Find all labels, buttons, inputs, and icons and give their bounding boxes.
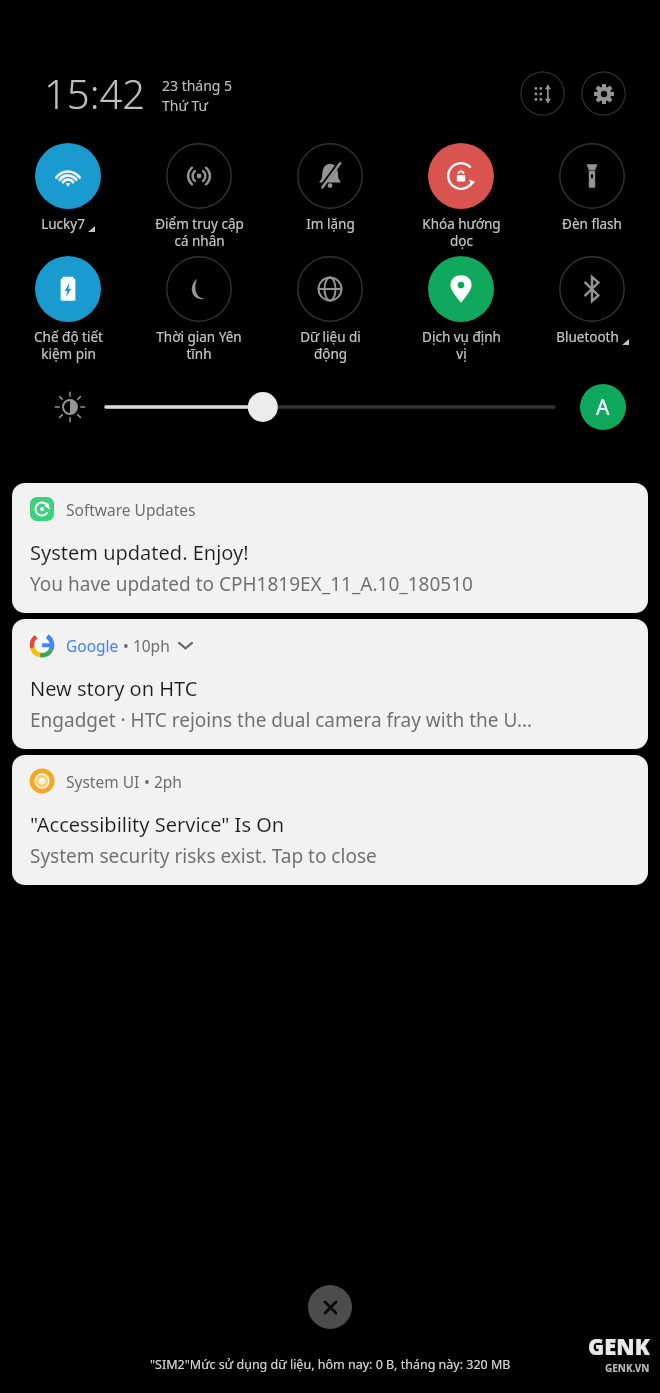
staticText: 15:42 bbox=[44, 66, 146, 120]
button[interactable]: Brightness bbox=[106, 390, 554, 424]
button[interactable]: Thời gian Yên tĩnh bbox=[136, 256, 262, 363]
staticText: "SIM2"Mức sử dụng dữ liệu, hôm nay: 0 B,… bbox=[150, 1356, 511, 1373]
staticText: Im lặng bbox=[306, 215, 355, 233]
staticText: Khóa hướng dọc bbox=[422, 215, 501, 250]
staticText: "Accessibility Service" Is On bbox=[30, 811, 285, 838]
staticText: You have updated to CPH1819EX_11_A.10_18… bbox=[30, 571, 473, 597]
button[interactable]: Auto brightness bbox=[580, 384, 626, 430]
staticText: A bbox=[596, 393, 610, 422]
staticText: GENK.VN bbox=[605, 1361, 650, 1375]
button[interactable]: Điểm truy cập cá nhân bbox=[136, 143, 262, 250]
button[interactable]: Bluetooth bbox=[529, 256, 655, 346]
button[interactable]: Google bbox=[12, 619, 648, 749]
staticText: Đèn flash bbox=[562, 215, 622, 233]
staticText: Google bbox=[66, 635, 119, 656]
staticText: GENK bbox=[588, 1331, 650, 1361]
staticText: Chế độ tiết kiệm pin bbox=[34, 328, 103, 363]
staticText: Lucky7 bbox=[41, 215, 85, 233]
button[interactable]: Khóa hướng dọc bbox=[398, 143, 524, 250]
staticText: System security risks exist. Tap to clos… bbox=[30, 843, 377, 869]
staticText: • 10ph bbox=[119, 635, 170, 656]
button[interactable]: Dịch vụ định vị bbox=[398, 256, 524, 363]
staticText: Bluetooth bbox=[556, 328, 619, 346]
button[interactable]: Clear all notifications bbox=[308, 1285, 352, 1329]
staticText: Engadget · HTC rejoins the dual camera f… bbox=[30, 707, 533, 733]
staticText: • 2ph bbox=[140, 771, 182, 792]
staticText: Dữ liệu di động bbox=[300, 328, 361, 363]
button[interactable]: Lucky7 bbox=[5, 143, 131, 233]
staticText: New story on HTC bbox=[30, 675, 198, 702]
button[interactable]: System UI bbox=[12, 755, 648, 885]
button[interactable]: Edit tiles bbox=[520, 71, 565, 116]
staticText: Điểm truy cập cá nhân bbox=[155, 215, 244, 250]
staticText: Software Updates bbox=[66, 499, 196, 520]
staticText: System UI bbox=[66, 771, 140, 792]
button[interactable]: Settings bbox=[581, 71, 626, 116]
button[interactable]: Đèn flash bbox=[529, 143, 655, 233]
button[interactable]: Software Updates bbox=[12, 483, 648, 613]
staticText: System updated. Enjoy! bbox=[30, 539, 249, 566]
staticText: Dịch vụ định vị bbox=[422, 328, 501, 363]
button[interactable]: Chế độ tiết kiệm pin bbox=[5, 256, 131, 363]
staticText: Thứ Tư bbox=[162, 96, 209, 115]
staticText: Thời gian Yên tĩnh bbox=[156, 328, 242, 363]
button[interactable]: Im lặng bbox=[267, 143, 393, 233]
button[interactable]: Dữ liệu di động bbox=[267, 256, 393, 363]
staticText: 23 tháng 5 bbox=[162, 76, 233, 95]
